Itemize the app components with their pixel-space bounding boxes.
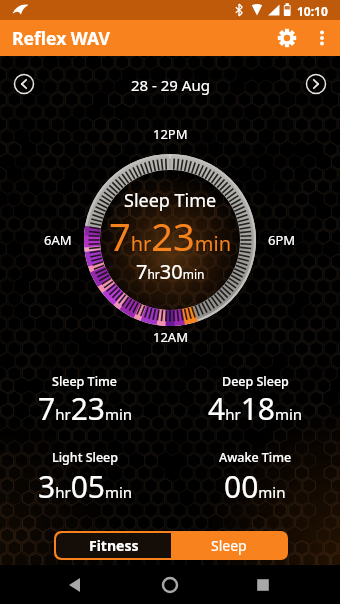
staticText: 6PM: [268, 231, 296, 249]
button[interactable]: [150, 565, 190, 604]
staticText: 7hr23min: [38, 388, 133, 428]
staticText: Sleep Time: [52, 373, 118, 390]
staticText: 28 - 29 Aug: [131, 75, 210, 95]
button[interactable]: [10, 70, 38, 98]
button[interactable]: Sleep: [171, 533, 286, 558]
button[interactable]: Fitness: [56, 533, 171, 558]
staticText: 4hr18min: [208, 388, 303, 428]
staticText: Fitness: [89, 536, 139, 555]
button[interactable]: [55, 565, 95, 604]
staticText: Reflex WAV: [12, 26, 110, 50]
staticText: 7hr23min: [109, 210, 232, 262]
button[interactable]: [302, 70, 330, 98]
staticText: 7hr30min: [136, 258, 205, 285]
staticText: Deep Sleep: [222, 373, 289, 390]
staticText: 12AM: [153, 328, 188, 346]
button[interactable]: [310, 26, 334, 50]
staticText: Sleep: [211, 536, 247, 555]
staticText: 10:10: [297, 3, 328, 19]
staticText: Sleep Time: [124, 188, 217, 213]
staticText: Awake Time: [219, 449, 292, 466]
staticText: 3hr05min: [38, 466, 133, 506]
staticText: 00min: [224, 466, 286, 506]
button[interactable]: [273, 24, 301, 52]
staticText: 12PM: [153, 125, 188, 143]
staticText: Light Sleep: [52, 449, 119, 466]
button[interactable]: [243, 565, 283, 604]
staticText: 6AM: [44, 231, 72, 249]
